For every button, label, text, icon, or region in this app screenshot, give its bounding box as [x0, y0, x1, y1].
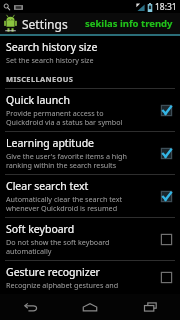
staticText: Provide permanent access to Quickdroid v…: [6, 108, 123, 127]
button[interactable]: Clear search text, on: [159, 189, 174, 204]
button[interactable]: Quick launch: [0, 89, 180, 131]
staticText: Automatically clear the search text when…: [6, 194, 123, 213]
staticText: Give the user's favorite items a high ra…: [6, 151, 127, 170]
button[interactable]: Home: [60, 294, 120, 320]
button[interactable]: Quick launch, on: [159, 103, 174, 118]
button[interactable]: Recent apps: [120, 294, 180, 320]
staticText: Search history size: [6, 40, 98, 54]
staticText: Settings: [22, 16, 68, 32]
button[interactable]: Gesture recognizer: [0, 261, 180, 294]
staticText: Learning aptitude: [6, 136, 95, 150]
other: App icon: [3, 15, 18, 32]
staticText: sekilas info trendy: [85, 17, 173, 30]
button[interactable]: App icon: [0, 13, 180, 34]
staticText: Recognize alphabet gestures and control …: [6, 280, 119, 290]
button[interactable]: Gesture recognizer, off: [159, 270, 174, 285]
button[interactable]: Soft keyboard, off: [159, 232, 174, 247]
button[interactable]: Clear search text: [0, 175, 180, 217]
button[interactable]: Search history size: [0, 36, 180, 69]
staticText: Set the search history size: [6, 55, 94, 65]
staticText: MISCELLANEOUS: [6, 74, 74, 84]
button[interactable]: Learning aptitude, on: [159, 146, 174, 161]
button[interactable]: Soft keyboard: [0, 218, 180, 260]
staticText: Quick launch: [6, 93, 70, 107]
staticText: Soft keyboard: [6, 222, 75, 236]
staticText: 18:31: [155, 1, 177, 13]
button[interactable]: Back: [0, 294, 60, 320]
staticText: Gesture recognizer: [6, 265, 100, 279]
staticText: Clear search text: [6, 179, 89, 193]
staticText: Do not show the soft keyboard automatica…: [6, 237, 110, 256]
button[interactable]: Learning aptitude: [0, 132, 180, 174]
